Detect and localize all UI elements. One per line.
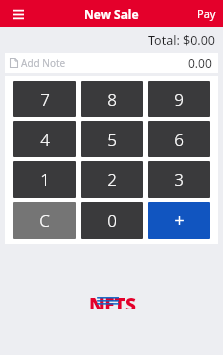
button[interactable]: Pay [190,2,223,25]
staticText: New Sale [84,6,139,22]
staticText: C [39,209,50,232]
button[interactable]: 8 [81,81,143,117]
staticText: 0 [107,209,117,232]
staticText: 7 [40,88,50,111]
staticText: 3 [174,168,184,191]
button[interactable]: Menu [6,2,30,26]
staticText: 4 [40,128,50,151]
staticText: 2 [107,168,117,191]
button[interactable]: 5 [81,121,143,157]
staticText: 8 [107,88,117,111]
button[interactable]: 2 [81,161,143,198]
button[interactable]: 6 [148,121,210,157]
staticText: 0.00 [188,55,212,71]
staticText: NETS [89,292,136,309]
staticText: 6 [174,128,184,151]
staticText: Total: $0.00 [148,32,215,49]
button[interactable]: C [13,202,76,239]
button[interactable] [148,202,210,239]
button[interactable]: Add Note [5,53,218,73]
staticText: 1 [40,168,50,191]
button[interactable]: 9 [148,81,210,117]
button[interactable]: 3 [148,161,210,198]
button[interactable]: 0 [81,202,143,239]
button[interactable]: 1 [13,161,76,198]
staticText: Pay [197,6,216,21]
staticText: 5 [107,128,117,151]
staticText: 9 [174,88,184,111]
button[interactable]: 7 [13,81,76,117]
staticText: Add Note [21,56,66,70]
button[interactable]: 4 [13,121,76,157]
